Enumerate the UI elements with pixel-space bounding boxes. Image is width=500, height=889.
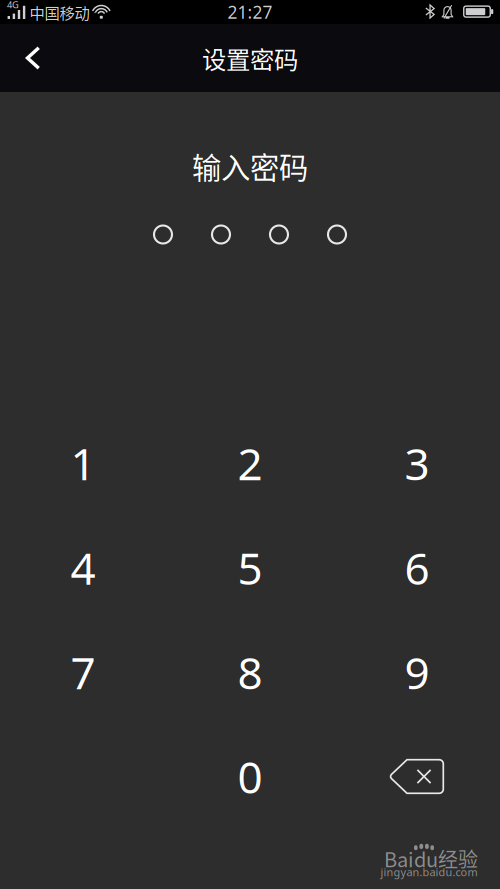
staticText: 设置密码 <box>202 40 298 76</box>
staticText: 7 <box>70 642 95 702</box>
staticText: 5 <box>237 538 262 598</box>
staticText: 21:27 <box>227 0 272 24</box>
staticText: 2 <box>237 433 262 493</box>
staticText: 4 <box>70 538 95 598</box>
button[interactable]: Delete <box>333 724 500 829</box>
staticText: 4G <box>7 0 19 11</box>
staticText: Baidu经验 <box>384 844 478 873</box>
staticText: 3 <box>404 433 429 493</box>
button[interactable]: 3 <box>333 411 500 515</box>
staticText: 9 <box>404 642 429 702</box>
staticText: jingyan.baidu.com <box>380 865 477 879</box>
button[interactable]: Back <box>0 24 66 92</box>
button[interactable]: 2 <box>166 411 333 515</box>
button[interactable]: 6 <box>333 515 500 620</box>
button[interactable]: 5 <box>166 515 333 620</box>
staticText: 0 <box>237 746 262 806</box>
button[interactable]: 7 <box>0 620 166 724</box>
staticText: 6 <box>404 538 429 598</box>
staticText: 1 <box>70 433 95 493</box>
button[interactable]: 0 <box>166 724 333 829</box>
button[interactable]: 1 <box>0 411 166 515</box>
staticText: 8 <box>237 642 262 702</box>
button[interactable]: 9 <box>333 620 500 724</box>
button[interactable]: 8 <box>166 620 333 724</box>
staticText: 中国移动 <box>29 1 89 23</box>
button[interactable]: 4 <box>0 515 166 620</box>
staticText: 输入密码 <box>192 145 308 187</box>
